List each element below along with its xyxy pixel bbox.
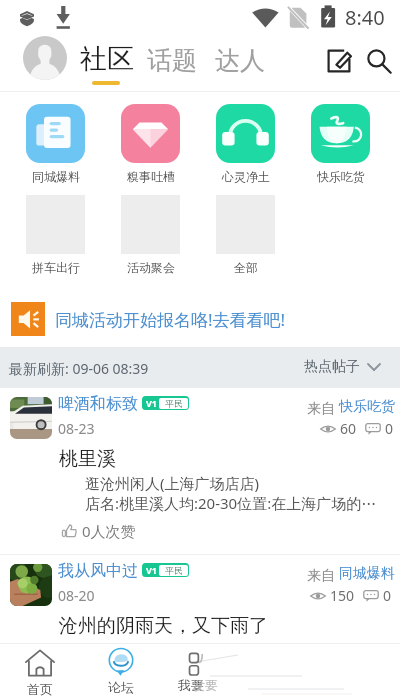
button[interactable]: 活动聚会 <box>103 193 199 279</box>
button[interactable]: Profile <box>23 36 67 80</box>
button[interactable]: 快乐吃货 <box>293 102 389 188</box>
staticText: 来自 <box>307 398 339 417</box>
staticText: 沧州的阴雨天，又下雨了 <box>59 614 268 638</box>
staticText: 热点帖子 <box>304 358 360 376</box>
staticText: 首页 <box>27 681 53 697</box>
staticText: 08-23 <box>58 419 95 438</box>
staticText: 最新刷新: 09-06 08:39 <box>9 359 149 378</box>
staticText: 店名:桃里溪人均:20-30位置:在上海广场的一个… <box>85 493 390 513</box>
staticText: 0 <box>385 419 394 438</box>
staticText: 活动聚会 <box>127 260 175 275</box>
staticText: 同城爆料 <box>339 565 395 583</box>
staticText: 话题 <box>147 45 197 76</box>
staticText: 论坛 <box>108 679 134 695</box>
staticText: 8:40 <box>345 4 385 31</box>
button[interactable]: 达人 <box>211 43 269 78</box>
staticText: 0人次赞 <box>82 521 136 541</box>
staticText: V1 <box>146 397 157 409</box>
staticText: 啤酒和标致 <box>58 394 138 414</box>
staticText: 60 <box>340 419 357 438</box>
button[interactable]: 话题 <box>143 43 201 78</box>
staticText: 我要 <box>178 677 204 693</box>
staticText: 我从风中过 <box>58 561 138 581</box>
staticText: 快乐吃货 <box>339 398 395 416</box>
button[interactable]: 热点帖子 <box>302 358 383 376</box>
button[interactable]: Compose post <box>320 42 358 80</box>
button[interactable]: 社区 <box>76 40 138 78</box>
button[interactable]: 0人次赞 <box>60 519 138 543</box>
staticText: 桃里溪 <box>59 447 116 471</box>
button[interactable]: 糗事吐槽 <box>103 102 199 188</box>
staticText: 150 <box>330 586 355 605</box>
staticText: 心灵净土 <box>222 169 270 184</box>
button[interactable]: 心灵净土 <box>198 102 294 188</box>
staticText: 08-20 <box>58 586 95 605</box>
staticText: 社区 <box>80 42 134 76</box>
staticText: 来自 <box>307 565 339 584</box>
button[interactable]: 我从风中过 <box>0 555 400 642</box>
button[interactable]: 论坛 <box>81 644 161 700</box>
staticText: 快乐吃货 <box>317 169 365 184</box>
staticText: 逛沧州闲人(上海广场店店) <box>85 473 260 493</box>
staticText: 糗事吐槽 <box>127 169 175 184</box>
button[interactable]: 首页 <box>0 644 80 700</box>
button[interactable]: Search <box>360 42 398 80</box>
button[interactable]: 我要 <box>168 644 230 700</box>
staticText: 全部 <box>234 260 258 275</box>
button[interactable]: 同城爆料 <box>8 102 104 188</box>
staticText: 发要 <box>192 677 218 693</box>
staticText: V1 <box>146 564 157 576</box>
staticText: 同城活动开始报名咯!去看看吧! <box>55 308 286 331</box>
staticText: 平民 <box>165 398 183 409</box>
button[interactable]: 拼车出行 <box>8 193 104 279</box>
button[interactable]: 啤酒和标致 <box>0 388 400 554</box>
button[interactable]: 全部 <box>198 193 294 279</box>
staticText: 同城爆料 <box>32 169 80 184</box>
staticText: 平民 <box>165 565 183 576</box>
staticText: 0 <box>383 586 392 605</box>
staticText: 拼车出行 <box>32 260 80 275</box>
staticText: 达人 <box>215 45 265 76</box>
button[interactable]: 同城活动开始报名咯!去看看吧! <box>0 289 400 347</box>
